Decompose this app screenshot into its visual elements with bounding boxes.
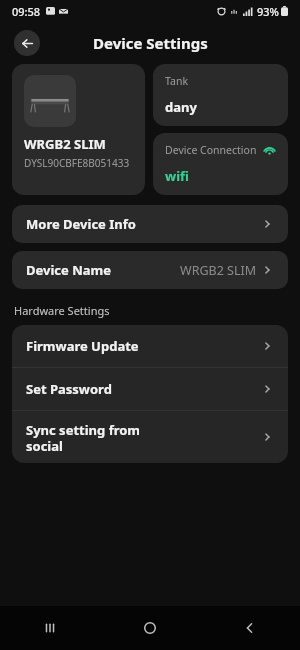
button[interactable]: Home bbox=[100, 606, 200, 650]
button[interactable]: WRGB2 SLIM bbox=[12, 64, 145, 195]
button[interactable]: More Device Info bbox=[12, 205, 288, 243]
staticText: wifi bbox=[165, 167, 189, 185]
button[interactable]: Firmware Update bbox=[12, 325, 288, 367]
staticText: Tank bbox=[165, 74, 188, 88]
button[interactable]: Back bbox=[14, 30, 40, 56]
staticText: WRGB2 SLIM bbox=[180, 262, 257, 279]
staticText: Set Password bbox=[26, 380, 112, 398]
staticText: Device Connection bbox=[165, 143, 257, 157]
button[interactable]: Sync setting from social bbox=[12, 411, 288, 463]
button[interactable]: Tank bbox=[153, 64, 288, 126]
button[interactable]: Recents bbox=[0, 606, 100, 650]
staticText: DYSL90CBFE8B051433 bbox=[24, 156, 130, 170]
staticText: Device Settings bbox=[93, 33, 208, 53]
staticText: Sync setting from social bbox=[26, 421, 141, 454]
staticText: Device Name bbox=[26, 261, 111, 279]
button[interactable]: Device Name bbox=[12, 251, 288, 289]
staticText: WRGB2 SLIM bbox=[24, 135, 106, 153]
staticText: 93% bbox=[257, 4, 279, 19]
staticText: 09:58 bbox=[12, 4, 41, 19]
staticText: More Device Info bbox=[26, 215, 136, 233]
button[interactable]: Device Connection bbox=[153, 133, 288, 195]
button[interactable]: Back bbox=[200, 606, 300, 650]
staticText: dany bbox=[165, 98, 197, 116]
staticText: Firmware Update bbox=[26, 337, 139, 355]
staticText: Hardware Settings bbox=[14, 303, 110, 318]
button[interactable]: Set Password bbox=[12, 368, 288, 410]
